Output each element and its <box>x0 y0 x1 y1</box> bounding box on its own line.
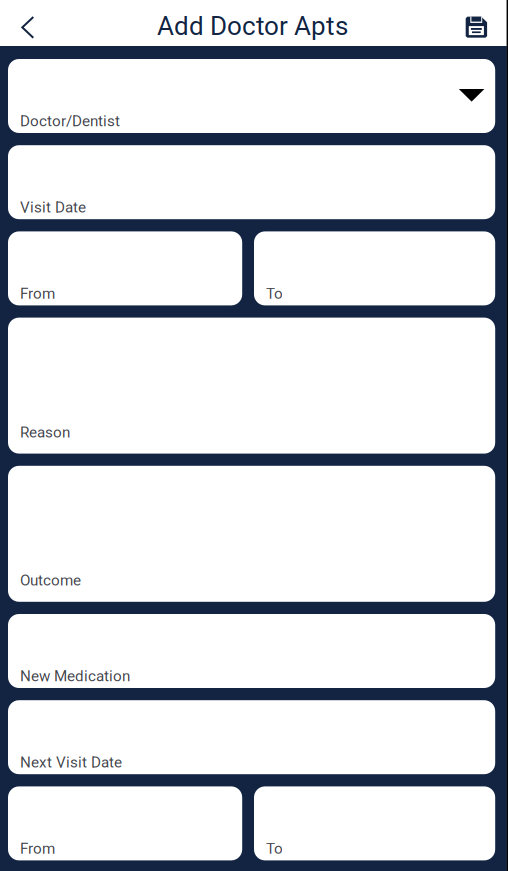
staticText: From <box>20 285 55 302</box>
button[interactable]: From <box>8 231 242 305</box>
staticText: Reason <box>20 423 70 441</box>
button[interactable]: To <box>254 231 495 305</box>
button[interactable]: To <box>254 786 495 860</box>
button[interactable]: Outcome <box>8 466 495 602</box>
staticText: To <box>266 285 283 302</box>
staticText: Next Visit Date <box>20 753 122 771</box>
staticText: Visit Date <box>20 198 86 216</box>
staticText: New Medication <box>20 667 130 685</box>
button[interactable]: Back <box>0 0 54 46</box>
staticText: Doctor/Dentist <box>20 112 120 130</box>
button[interactable]: New Medication <box>8 614 495 688</box>
staticText: Outcome <box>20 571 81 589</box>
staticText: From <box>20 840 55 857</box>
button[interactable]: From <box>8 786 242 860</box>
button[interactable]: Reason <box>8 318 495 454</box>
button[interactable]: Visit Date <box>8 145 495 219</box>
button[interactable]: Doctor/Dentist <box>8 59 495 133</box>
staticText: Add Doctor Apts <box>157 11 348 41</box>
staticText: To <box>266 840 283 857</box>
button[interactable]: Next Visit Date <box>8 700 495 774</box>
button[interactable]: Save <box>444 0 507 46</box>
